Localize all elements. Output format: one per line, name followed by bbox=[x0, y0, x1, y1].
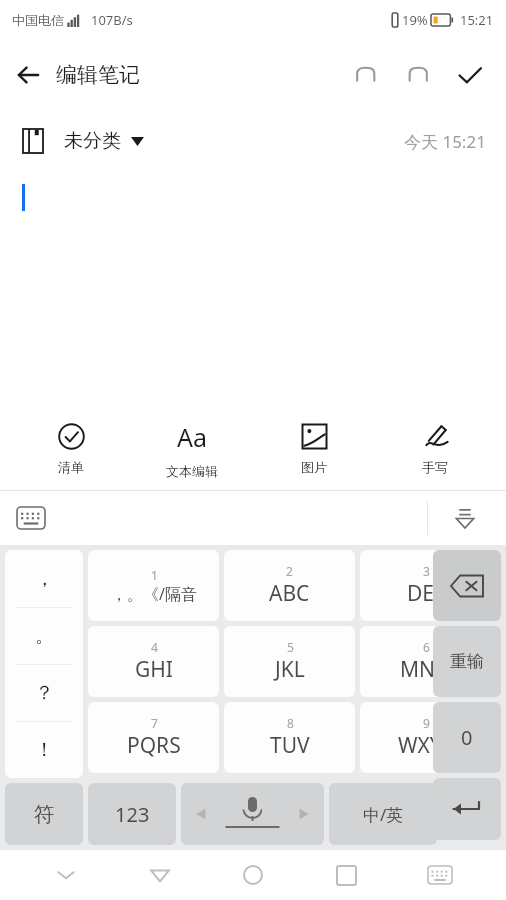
staticText: PQRS bbox=[127, 731, 181, 760]
staticText: 3 bbox=[423, 563, 430, 579]
button[interactable]: 2 bbox=[224, 550, 355, 621]
staticText: 7 bbox=[151, 715, 158, 731]
button[interactable]: ， bbox=[5, 550, 83, 607]
staticText: 未分类 bbox=[64, 129, 121, 153]
button[interactable]: Keyboard bbox=[8, 495, 54, 541]
staticText: TUV bbox=[270, 731, 310, 760]
button[interactable]: Save bbox=[444, 49, 496, 101]
button[interactable]: Hide keyboard bbox=[442, 495, 488, 541]
staticText: 15:21 bbox=[460, 11, 494, 29]
button[interactable]: 5 bbox=[224, 626, 355, 697]
button[interactable]: Aa bbox=[142, 420, 242, 479]
button[interactable]: 1 bbox=[88, 550, 219, 621]
button[interactable]: Home bbox=[226, 850, 280, 900]
button[interactable]: Keyboard bbox=[413, 850, 467, 900]
button[interactable]: Back bbox=[133, 850, 187, 900]
staticText: 9 bbox=[423, 715, 430, 731]
staticText: 1 bbox=[151, 567, 158, 583]
staticText: 编辑笔记 bbox=[56, 62, 140, 88]
staticText: 123 bbox=[115, 801, 150, 828]
staticText: 重输 bbox=[450, 651, 484, 672]
staticText: 2 bbox=[286, 563, 293, 579]
button[interactable]: Undo bbox=[340, 49, 392, 101]
staticText: 107B/s bbox=[91, 11, 133, 29]
staticText: 中国电信 bbox=[12, 12, 64, 28]
staticText: Aa bbox=[177, 420, 208, 454]
button[interactable]: 8 bbox=[224, 702, 355, 773]
button[interactable]: 清单 bbox=[21, 423, 121, 475]
staticText: 。 bbox=[35, 624, 54, 648]
staticText: ， bbox=[35, 567, 54, 591]
staticText: 符 bbox=[34, 802, 54, 827]
button[interactable]: ！ bbox=[5, 722, 83, 778]
button[interactable]: 中/英 bbox=[329, 783, 437, 845]
button[interactable]: ？ bbox=[5, 665, 83, 721]
staticText: 清单 bbox=[58, 459, 84, 475]
button[interactable]: 符 bbox=[5, 783, 83, 845]
staticText: GHI bbox=[135, 655, 173, 684]
staticText: 文本编辑 bbox=[166, 463, 218, 479]
staticText: 4 bbox=[151, 639, 158, 655]
button[interactable]: 重输 bbox=[433, 626, 501, 697]
staticText: 5 bbox=[287, 639, 294, 655]
staticText: 手写 bbox=[422, 459, 448, 475]
button[interactable]: 6 bbox=[360, 626, 491, 697]
button[interactable]: Enter bbox=[433, 778, 501, 840]
staticText: 19% bbox=[402, 11, 428, 29]
button[interactable]: Redo bbox=[392, 49, 444, 101]
button[interactable]: Back bbox=[0, 47, 56, 103]
staticText: WXYZ bbox=[398, 731, 454, 760]
staticText: ！ bbox=[35, 738, 54, 762]
button[interactable]: Recents bbox=[319, 850, 373, 900]
staticText: 6 bbox=[423, 639, 430, 655]
button[interactable]: 0 bbox=[433, 702, 501, 773]
button[interactable]: 123 bbox=[88, 783, 176, 845]
button[interactable]: 未分类 bbox=[22, 128, 144, 154]
button[interactable]: Delete bbox=[433, 550, 501, 621]
button[interactable]: 7 bbox=[88, 702, 219, 773]
button[interactable]: 4 bbox=[88, 626, 219, 697]
staticText: 0 bbox=[461, 724, 473, 751]
staticText: MNO bbox=[400, 655, 452, 684]
button[interactable]: 图片 bbox=[264, 423, 364, 475]
staticText: DEF bbox=[407, 579, 445, 608]
staticText: 8 bbox=[287, 715, 294, 731]
button[interactable]: 3 bbox=[360, 550, 491, 621]
staticText: ABC bbox=[269, 579, 310, 608]
staticText: 图片 bbox=[301, 459, 327, 475]
staticText: 今天 15:21 bbox=[404, 130, 486, 153]
button[interactable]: Space, voice input bbox=[181, 783, 324, 845]
button[interactable]: 9 bbox=[360, 702, 491, 773]
staticText: ，。《/隔音 bbox=[111, 583, 197, 605]
button[interactable]: 。 bbox=[5, 608, 83, 664]
staticText: 中/英 bbox=[363, 803, 404, 826]
button[interactable]: 手写 bbox=[385, 423, 485, 475]
button[interactable]: Collapse bbox=[39, 850, 93, 900]
staticText: ？ bbox=[35, 681, 54, 705]
staticText: JKL bbox=[275, 655, 305, 684]
